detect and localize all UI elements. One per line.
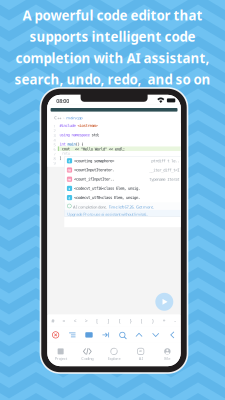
staticText: Me bbox=[164, 356, 170, 361]
staticText: search, undo, redo, and so on bbox=[14, 70, 210, 88]
button[interactable]: - bbox=[170, 314, 181, 327]
button[interactable]: = bbox=[58, 314, 69, 327]
staticText: #include bbox=[59, 123, 77, 128]
staticText: Upgrade Pro to use ai assistant without … bbox=[67, 212, 148, 217]
button[interactable]: < bbox=[69, 314, 81, 327]
staticText: <countInputIterator. bbox=[74, 168, 114, 172]
staticText: ] bbox=[107, 317, 109, 324]
staticText: AI completion done. bbox=[73, 204, 107, 209]
staticText: int bbox=[59, 142, 67, 146]
button[interactable]: AI bbox=[127, 343, 154, 366]
button[interactable]: ( bbox=[136, 314, 147, 327]
button[interactable]: Search bbox=[114, 327, 131, 343]
staticText: Coding bbox=[81, 356, 93, 361]
button[interactable]: Project bbox=[47, 343, 74, 366]
staticText: ) bbox=[152, 317, 154, 324]
staticText: 1 bbox=[53, 123, 55, 129]
button[interactable]: } bbox=[125, 314, 136, 327]
button[interactable]: > bbox=[81, 314, 92, 327]
staticText: [ bbox=[96, 317, 98, 324]
button[interactable]: Explore bbox=[101, 343, 127, 366]
staticText: << "Hello World" << endl; bbox=[75, 147, 125, 151]
staticText: c bbox=[68, 158, 70, 163]
staticText: } bbox=[130, 317, 132, 324]
button[interactable]: Find next bbox=[147, 327, 164, 343]
staticText: c bbox=[68, 186, 70, 191]
staticText: C++ bbox=[54, 115, 61, 120]
button[interactable]: Stop bbox=[47, 327, 64, 343]
staticText: 8 bbox=[53, 156, 55, 161]
button[interactable]: Back bbox=[164, 327, 181, 343]
staticText: # bbox=[51, 317, 54, 324]
staticText: typename Iterat bbox=[149, 177, 179, 182]
staticText: c bbox=[68, 195, 70, 200]
staticText: > bbox=[85, 317, 88, 324]
staticText: namespace bbox=[71, 133, 91, 137]
staticText: <codecvt_utf8<class Elem, unsign. bbox=[74, 195, 140, 200]
staticText: 3 bbox=[53, 133, 55, 138]
staticText: supports intelligent code bbox=[29, 28, 195, 45]
staticText: m bbox=[67, 176, 71, 182]
staticText: m bbox=[67, 167, 71, 173]
staticText: 9 bbox=[53, 161, 55, 166]
button[interactable]: + bbox=[158, 314, 170, 327]
staticText: 08:00 bbox=[56, 97, 69, 104]
staticText: main bbox=[67, 142, 75, 146]
staticText: 5 bbox=[53, 142, 55, 147]
staticText: <count_ifInputIter.. bbox=[74, 177, 114, 181]
staticText: } bbox=[59, 156, 61, 160]
staticText: 2 bbox=[53, 128, 55, 133]
staticText: › bbox=[61, 115, 66, 120]
staticText: { bbox=[119, 317, 121, 324]
button[interactable]: Indent bbox=[64, 327, 81, 343]
staticText: retu bbox=[62, 151, 70, 156]
button[interactable]: Tab bbox=[97, 327, 114, 343]
button[interactable]: ] bbox=[103, 314, 114, 327]
staticText: + bbox=[162, 317, 165, 324]
button[interactable]: Coding bbox=[74, 343, 101, 366]
staticText: Time left 67.26. bbox=[108, 204, 134, 209]
staticText: <codecvt_utf16<class Elem, unsig. bbox=[74, 186, 140, 191]
staticText: ( bbox=[141, 317, 143, 324]
button[interactable]: # bbox=[47, 314, 58, 327]
button[interactable]: [ bbox=[92, 314, 103, 327]
staticText: ptrdiff_t le.. bbox=[151, 159, 179, 163]
staticText: AI bbox=[139, 356, 143, 361]
staticText: = bbox=[62, 317, 65, 324]
button[interactable]: Me bbox=[154, 343, 181, 366]
staticText: 4 bbox=[53, 137, 55, 143]
staticText: completion with AI assistant, bbox=[15, 49, 209, 67]
staticText: () { bbox=[75, 142, 83, 146]
staticText: <iostream> bbox=[77, 123, 97, 128]
staticText: < bbox=[74, 317, 77, 324]
staticText: using bbox=[59, 133, 71, 137]
staticText: AI bbox=[139, 350, 142, 353]
button[interactable]: Find previous bbox=[131, 327, 147, 343]
staticText: 6 bbox=[53, 147, 55, 152]
staticText: __iter_diff_t<I bbox=[149, 168, 179, 172]
staticText: std; bbox=[91, 133, 99, 137]
staticText: Explore bbox=[107, 356, 120, 361]
staticText: A powerful code editor that bbox=[22, 6, 202, 24]
staticText: main.cpp bbox=[66, 115, 82, 120]
staticText: cout bbox=[62, 146, 70, 151]
button[interactable]: ) bbox=[147, 314, 158, 327]
staticText: 7 bbox=[53, 151, 55, 157]
staticText: <counting_semaphore> bbox=[74, 158, 114, 163]
staticText: Get more. bbox=[136, 204, 154, 209]
button[interactable]: { bbox=[114, 314, 125, 327]
staticText: - bbox=[174, 317, 176, 324]
staticText: Project bbox=[55, 356, 67, 361]
button[interactable]: Keyboard bbox=[81, 327, 97, 343]
